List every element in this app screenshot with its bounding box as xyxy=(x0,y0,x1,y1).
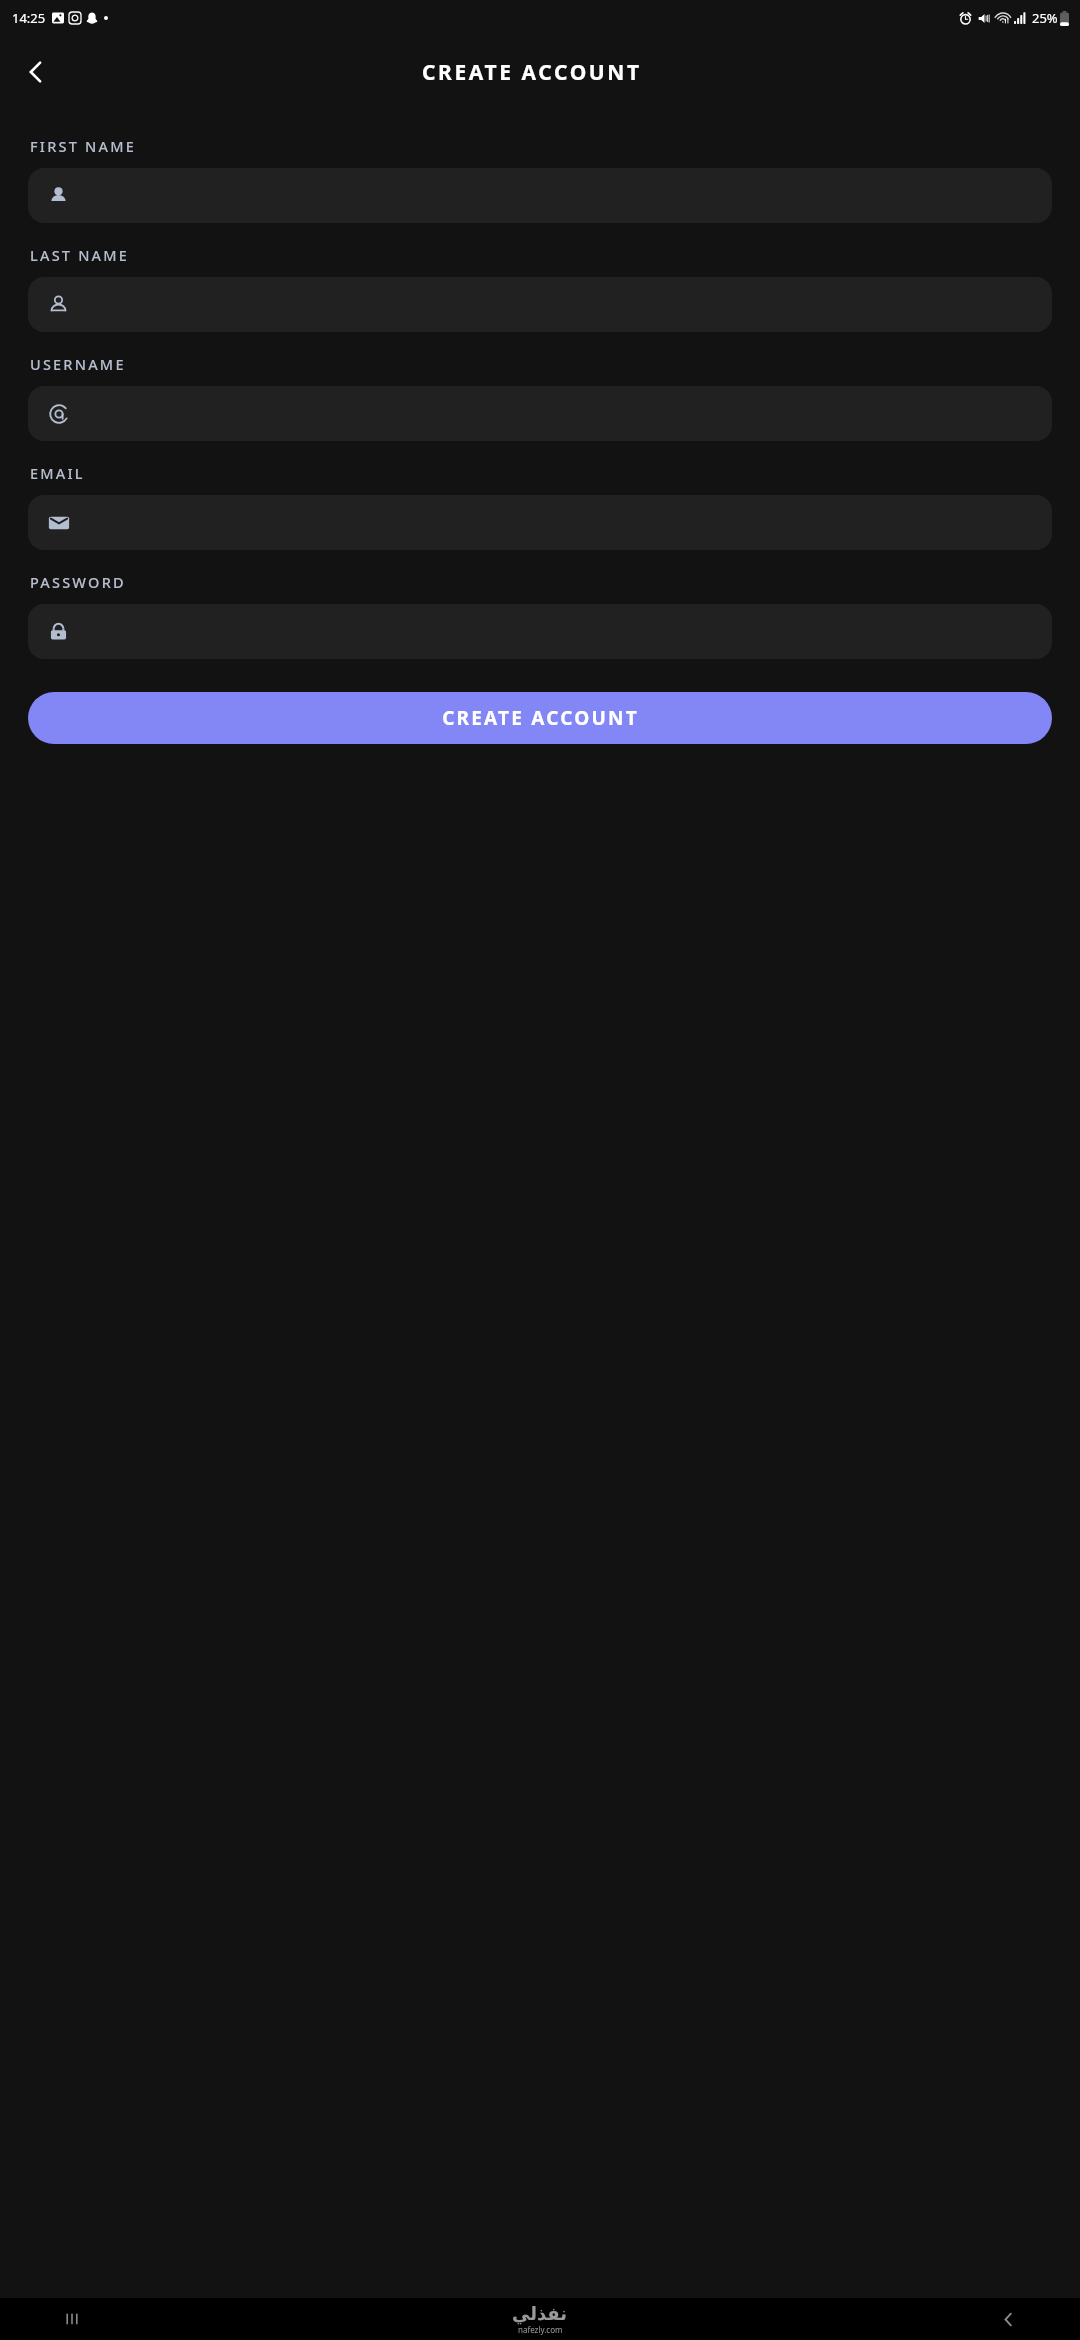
staticText: CREATE ACCOUNT xyxy=(422,58,642,87)
button[interactable] xyxy=(28,604,1052,659)
button[interactable] xyxy=(28,277,1052,332)
staticText: EMAIL xyxy=(30,463,85,483)
button[interactable] xyxy=(28,386,1052,441)
staticText: USERNAME xyxy=(30,354,126,374)
staticText: CREATE ACCOUNT xyxy=(442,705,639,731)
button[interactable]: Back xyxy=(8,44,64,100)
staticText: FIRST NAME xyxy=(30,136,136,156)
staticText: PASSWORD xyxy=(30,572,126,592)
staticText: نفذلي xyxy=(512,2303,568,2324)
button[interactable] xyxy=(28,168,1052,223)
button[interactable]: Recents xyxy=(50,2298,94,2340)
button[interactable] xyxy=(28,495,1052,550)
staticText: nafezly.com xyxy=(518,2324,563,2335)
staticText: 14:25 xyxy=(12,9,46,27)
button[interactable]: Back xyxy=(986,2298,1030,2340)
staticText: 25% xyxy=(1032,9,1058,27)
staticText: LAST NAME xyxy=(30,245,130,265)
button[interactable]: CREATE ACCOUNT xyxy=(28,692,1052,744)
